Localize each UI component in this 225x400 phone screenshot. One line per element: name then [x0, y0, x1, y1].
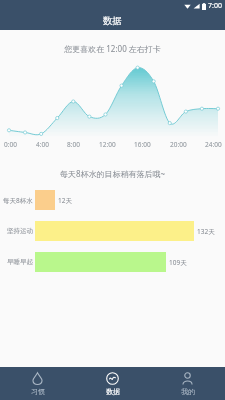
staticText: 7:00	[208, 1, 222, 11]
staticText: 0:00	[4, 140, 17, 149]
staticText: 16:00	[134, 140, 151, 149]
staticText: 109天	[169, 258, 187, 267]
staticText: 12天	[58, 196, 72, 205]
staticText: 我的	[181, 387, 195, 396]
button[interactable]: 坚持运动	[0, 221, 225, 241]
staticText: 数据	[103, 15, 122, 27]
staticText: 24:00	[205, 140, 222, 149]
staticText: 数据	[106, 387, 120, 396]
staticText: 12:00	[99, 140, 116, 149]
staticText: 习惯	[31, 387, 45, 396]
staticText: 132天	[197, 227, 215, 236]
staticText: 每天8杯水	[3, 196, 33, 205]
button[interactable]: 习惯	[0, 367, 75, 400]
staticText: 8:00	[67, 140, 80, 149]
staticText: 4:00	[36, 140, 49, 149]
staticText: 您更喜欢在 12:00 左右打卡	[0, 43, 225, 54]
button[interactable]: 早睡早起	[0, 252, 225, 272]
staticText: 坚持运动	[7, 227, 33, 235]
staticText: 早睡早起	[7, 258, 33, 266]
button[interactable]: 数据	[75, 367, 150, 400]
button[interactable]: 我的	[150, 367, 225, 400]
button[interactable]: 每天8杯水	[0, 190, 225, 210]
staticText: 20:00	[170, 140, 187, 149]
staticText: 每天8杯水的目标稍有落后哦~	[0, 168, 225, 179]
